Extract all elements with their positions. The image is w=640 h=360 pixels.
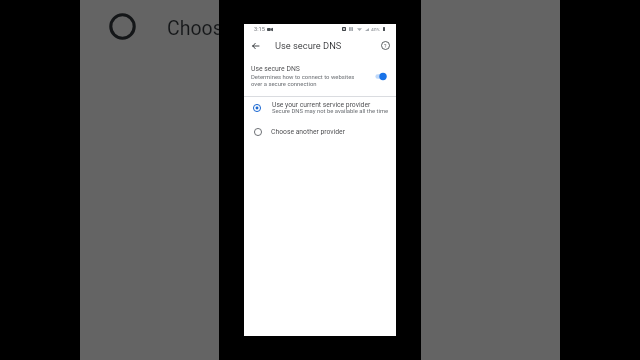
staticText: Secure DNS may not be available all the … bbox=[272, 108, 389, 115]
staticText: Use your current service provider bbox=[272, 101, 371, 109]
button[interactable]: Use your current service provider bbox=[244, 96, 396, 119]
button[interactable]: Use secure DNS bbox=[244, 61, 396, 93]
staticText: Choose another provider bbox=[271, 128, 346, 136]
button[interactable]: Navigate up bbox=[248, 38, 263, 53]
button[interactable]: Help bbox=[379, 39, 392, 52]
button[interactable]: Choose another provider bbox=[244, 119, 396, 141]
staticText: ? bbox=[384, 43, 387, 49]
staticText: 3:15 bbox=[254, 26, 265, 33]
staticText: over a secure connection bbox=[251, 81, 317, 88]
staticText: Determines how to connect to websites bbox=[251, 74, 355, 81]
staticText: Use secure DNS bbox=[275, 40, 342, 51]
staticText: 40% bbox=[371, 27, 381, 31]
staticText: Choose another provider bbox=[167, 17, 380, 40]
staticText: Use secure DNS bbox=[251, 65, 300, 73]
